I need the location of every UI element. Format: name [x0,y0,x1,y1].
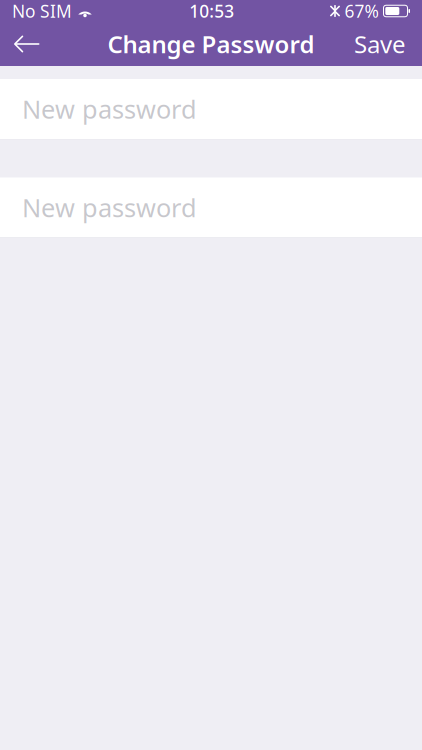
button[interactable]: Back [0,22,54,66]
staticText: Change Password [107,28,314,60]
staticText: New password [22,191,197,224]
staticText: Save [354,28,406,60]
staticText: New password [22,92,197,126]
button[interactable]: Save [338,22,422,66]
staticText: No SIM [12,0,72,22]
staticText: 10:53 [189,0,234,22]
button[interactable]: New password [0,177,422,237]
staticText: 67% [344,0,378,22]
button[interactable]: New password [0,79,422,139]
